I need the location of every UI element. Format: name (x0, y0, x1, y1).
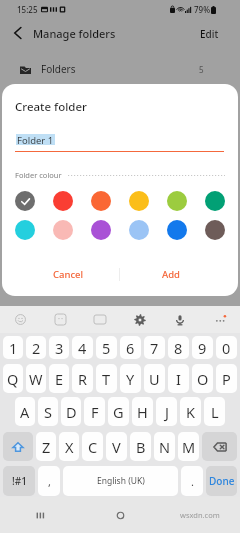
button[interactable]: K (180, 397, 201, 426)
staticText: C (88, 437, 98, 457)
button[interactable]: E (49, 364, 69, 393)
staticText: 8 (174, 338, 183, 358)
button[interactable]: Settings (120, 306, 160, 333)
staticText: 5 (102, 338, 111, 358)
button[interactable]: Q (3, 364, 23, 393)
button[interactable]: U (144, 364, 165, 393)
button[interactable]: 7 (144, 336, 165, 359)
button[interactable]: Backspace (202, 432, 237, 461)
button[interactable]: Colour (53, 191, 73, 211)
button[interactable]: Voice input (160, 306, 200, 333)
button[interactable]: Colour (205, 191, 225, 211)
staticText: Folder 1 (17, 134, 54, 145)
button[interactable]: Colour (205, 220, 225, 240)
button[interactable]: 0 (216, 336, 237, 359)
button[interactable]: O (192, 364, 213, 393)
staticText: Add (162, 268, 181, 281)
button[interactable]: S (38, 397, 58, 426)
button[interactable]: Folders (0, 57, 240, 81)
staticText: 7 (150, 338, 159, 358)
staticText: I (176, 369, 181, 389)
button[interactable]: 9 (192, 336, 213, 359)
staticText: 79% (194, 4, 210, 15)
staticText: Edit (200, 27, 219, 41)
button[interactable]: , (38, 466, 60, 496)
button[interactable]: G (108, 397, 129, 426)
button[interactable]: T (96, 364, 117, 393)
staticText: Folders (41, 62, 76, 76)
button[interactable]: N (154, 432, 175, 461)
button[interactable]: !#1 (3, 466, 35, 496)
staticText: R (78, 369, 88, 389)
button[interactable]: C (82, 432, 103, 461)
button[interactable]: Back (9, 24, 27, 42)
staticText: 6 (126, 338, 135, 358)
button[interactable]: H (132, 397, 153, 426)
staticText: 1 (9, 338, 18, 358)
staticText: wsxdn.com (180, 510, 220, 520)
button[interactable]: B (130, 432, 151, 461)
button[interactable]: Colour (53, 220, 73, 240)
button[interactable]: P (216, 364, 237, 393)
button[interactable]: L (204, 397, 225, 426)
button[interactable]: Colour (91, 191, 111, 211)
staticText: O (197, 369, 209, 389)
button[interactable]: Shift (3, 432, 33, 461)
staticText: 4 (78, 338, 87, 358)
button[interactable]: Colour (167, 191, 187, 211)
button[interactable]: English (UK) (63, 466, 178, 496)
staticText: N (159, 437, 171, 457)
button[interactable]: 1 (3, 336, 23, 359)
button[interactable]: 6 (120, 336, 141, 359)
staticText: W (29, 369, 43, 389)
button[interactable]: 3 (49, 336, 69, 359)
button[interactable]: F (84, 397, 105, 426)
button[interactable]: Colour (129, 220, 149, 240)
button[interactable]: More options (200, 306, 240, 333)
button[interactable]: X (59, 432, 79, 461)
staticText: E (55, 369, 64, 389)
button[interactable]: Home (80, 497, 160, 533)
staticText: L (211, 402, 219, 422)
button[interactable]: GIF (80, 306, 120, 333)
button[interactable]: Colour (15, 220, 35, 240)
button[interactable]: Colour (167, 220, 187, 240)
button[interactable]: Colour (15, 191, 35, 211)
button[interactable]: Recents (0, 497, 80, 533)
staticText: Cancel (53, 268, 84, 281)
button[interactable]: I (168, 364, 189, 393)
button[interactable]: M (178, 432, 199, 461)
staticText: B (136, 437, 146, 457)
button[interactable]: Edit (196, 23, 223, 45)
button[interactable]: Cancel (18, 261, 119, 287)
button[interactable]: A (15, 397, 35, 426)
button[interactable]: . (181, 466, 203, 496)
staticText: !#1 (12, 474, 27, 488)
button[interactable]: Z (36, 432, 56, 461)
button[interactable]: Done (206, 466, 237, 496)
button[interactable]: 5 (96, 336, 117, 359)
staticText: Y (126, 369, 135, 389)
staticText: 15:25 (17, 4, 38, 15)
button[interactable]: W (26, 364, 46, 393)
staticText: F (91, 402, 99, 422)
button[interactable]: J (156, 397, 177, 426)
staticText: V (112, 437, 121, 457)
button[interactable]: D (61, 397, 81, 426)
button[interactable]: Add (120, 261, 222, 287)
button[interactable]: Colour (91, 220, 111, 240)
button[interactable]: V (106, 432, 127, 461)
button[interactable]: Emoji (0, 306, 40, 333)
staticText: Done (209, 474, 235, 488)
button[interactable]: 4 (72, 336, 93, 359)
staticText: 5 (199, 64, 204, 75)
button[interactable]: 8 (168, 336, 189, 359)
button[interactable]: Colour (129, 191, 149, 211)
button[interactable]: Y (120, 364, 141, 393)
button[interactable]: 2 (26, 336, 46, 359)
button[interactable]: Stickers (40, 306, 80, 333)
staticText: Q (7, 369, 19, 389)
button[interactable]: Back (160, 497, 240, 533)
staticText: K (186, 402, 195, 422)
button[interactable]: R (72, 364, 93, 393)
